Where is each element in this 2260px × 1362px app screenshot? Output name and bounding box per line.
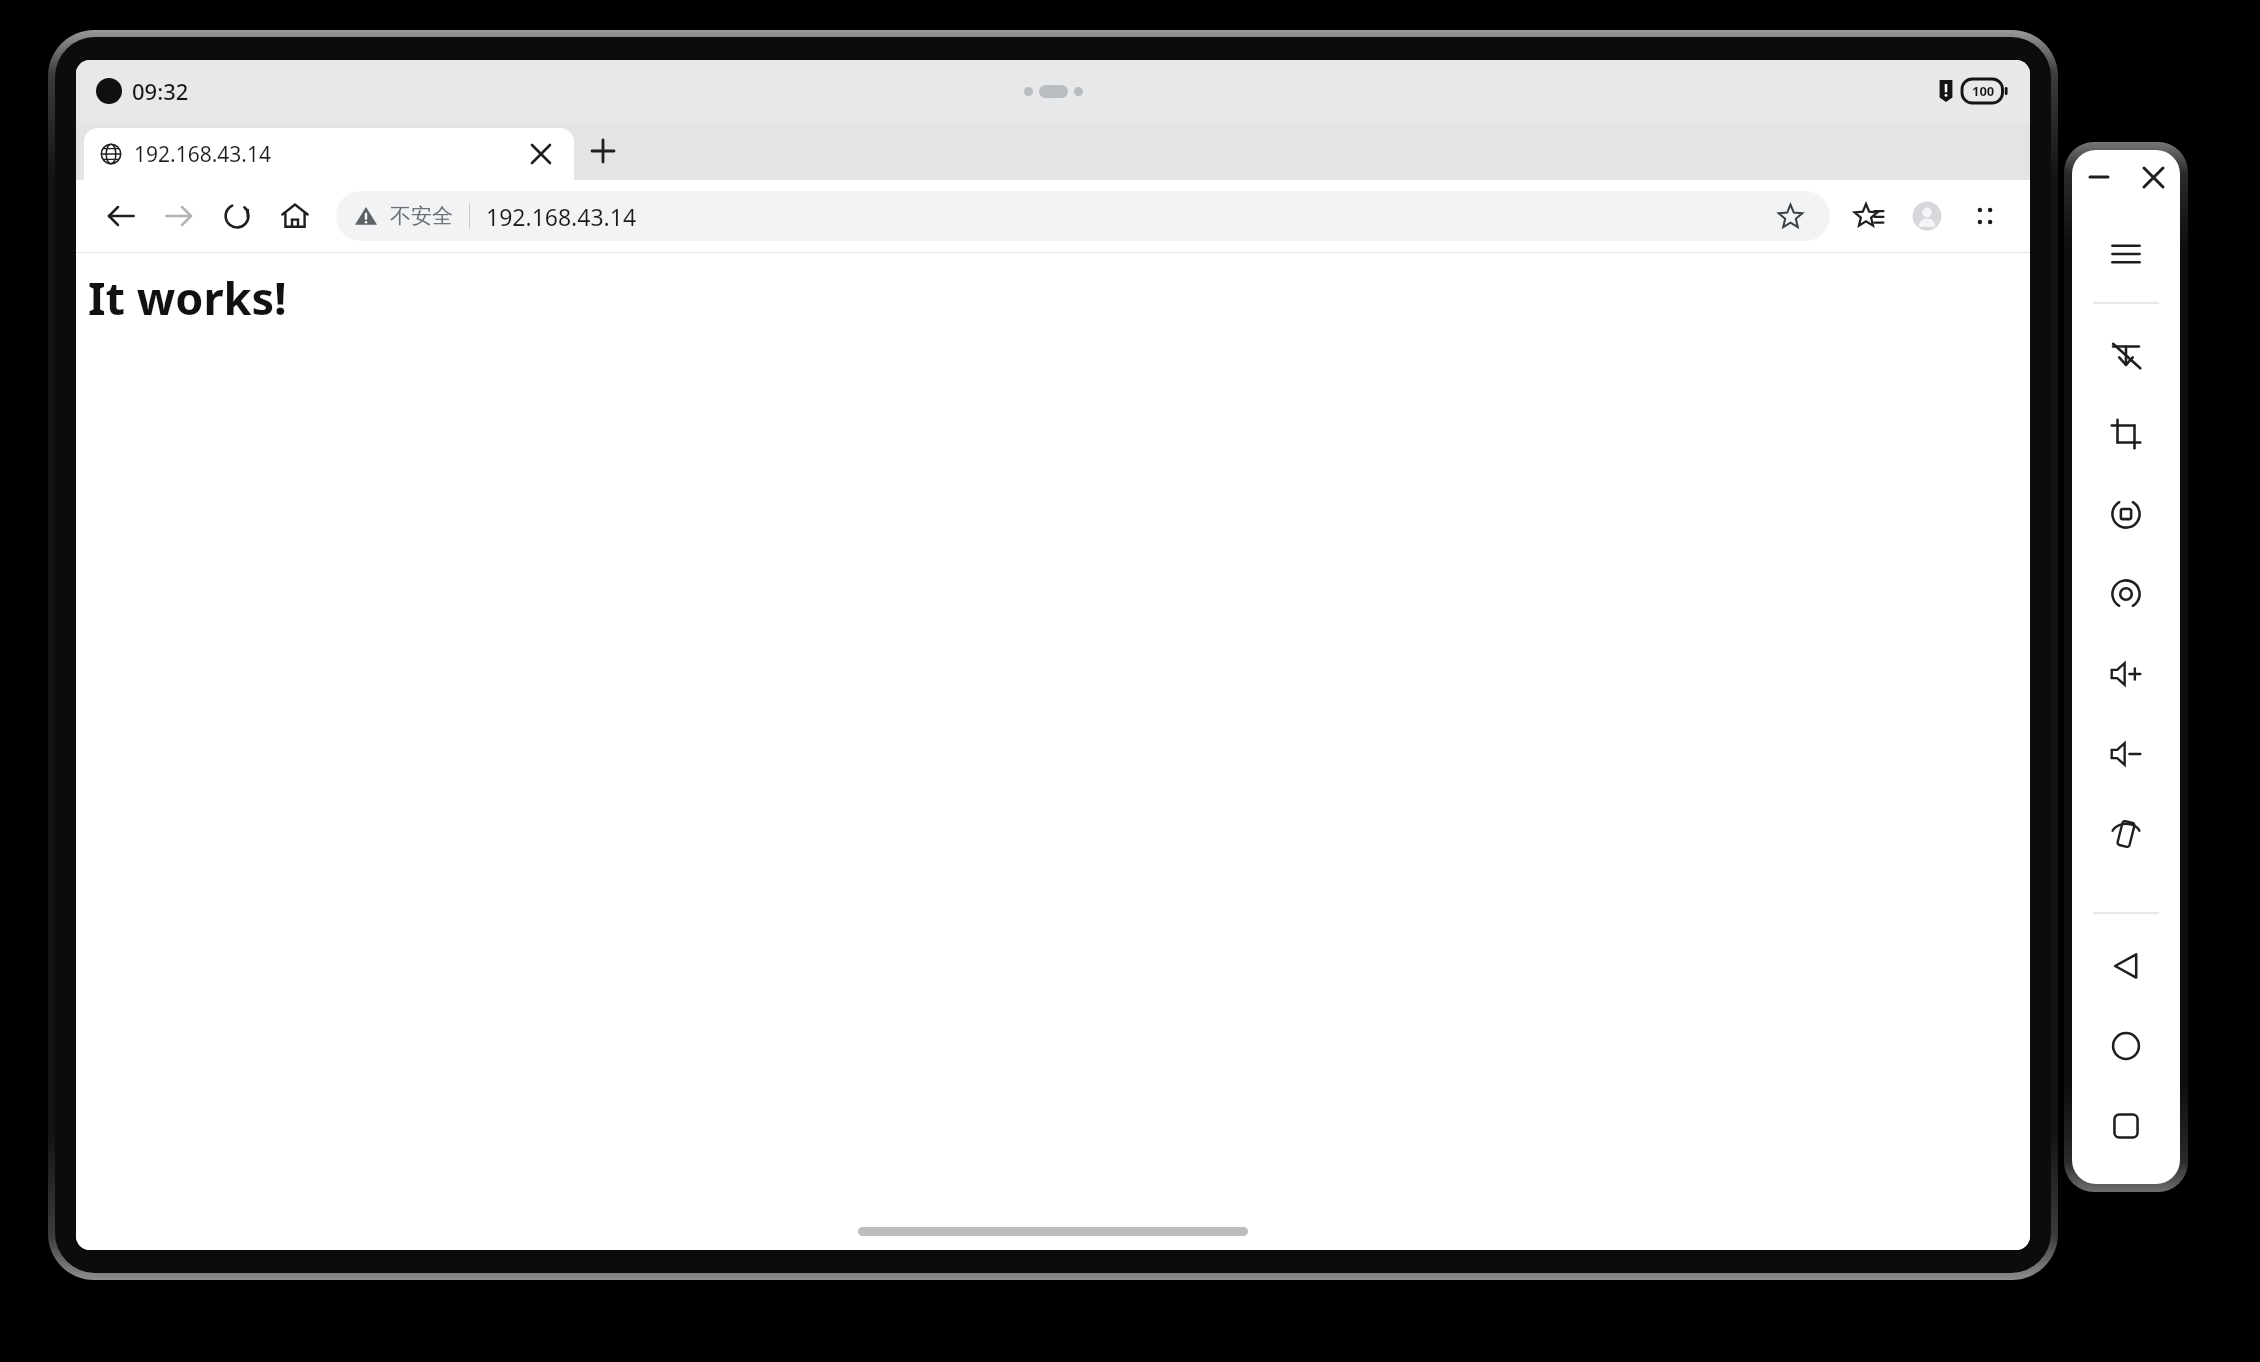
button[interactable]: Record screen bbox=[2072, 474, 2180, 554]
button[interactable]: Home bbox=[2072, 1006, 2180, 1086]
button[interactable]: Forward bbox=[150, 187, 208, 245]
button[interactable]: New tab bbox=[574, 122, 632, 180]
button[interactable]: Back bbox=[2072, 926, 2180, 1006]
button[interactable]: Bookmark this page bbox=[1768, 194, 1812, 238]
button[interactable]: Close tab bbox=[524, 137, 558, 171]
staticText: It works! bbox=[88, 267, 287, 328]
button[interactable]: Reload bbox=[208, 187, 266, 245]
staticText: 09:32 bbox=[132, 76, 189, 106]
button[interactable]: Volume down bbox=[2072, 714, 2180, 794]
button[interactable]: Home bbox=[266, 187, 324, 245]
button[interactable]: Screenshot bbox=[2072, 554, 2180, 634]
button[interactable]: Menu bbox=[2072, 214, 2180, 294]
button[interactable]: More options bbox=[1956, 187, 2014, 245]
staticText: 192.168.43.14 bbox=[134, 140, 272, 169]
button[interactable]: 192.168.43.14 bbox=[84, 128, 574, 180]
button[interactable]: Close bbox=[2136, 160, 2170, 194]
staticText: 不安全 bbox=[390, 203, 453, 229]
button[interactable]: Volume up bbox=[2072, 634, 2180, 714]
button[interactable]: 不安全 bbox=[336, 191, 1830, 241]
staticText: 100 bbox=[1972, 82, 1995, 100]
button[interactable]: Rotate bbox=[2072, 794, 2180, 874]
button[interactable]: Crop bbox=[2072, 394, 2180, 474]
staticText: 192.168.43.14 bbox=[486, 201, 637, 232]
button[interactable]: Profile bbox=[1898, 187, 1956, 245]
button[interactable]: Disable screenshot bbox=[2072, 314, 2180, 394]
button[interactable]: Back bbox=[92, 187, 150, 245]
button[interactable]: Minimize bbox=[2082, 160, 2116, 194]
button[interactable]: Recents bbox=[2072, 1086, 2180, 1166]
button[interactable]: Collections bbox=[1840, 187, 1898, 245]
